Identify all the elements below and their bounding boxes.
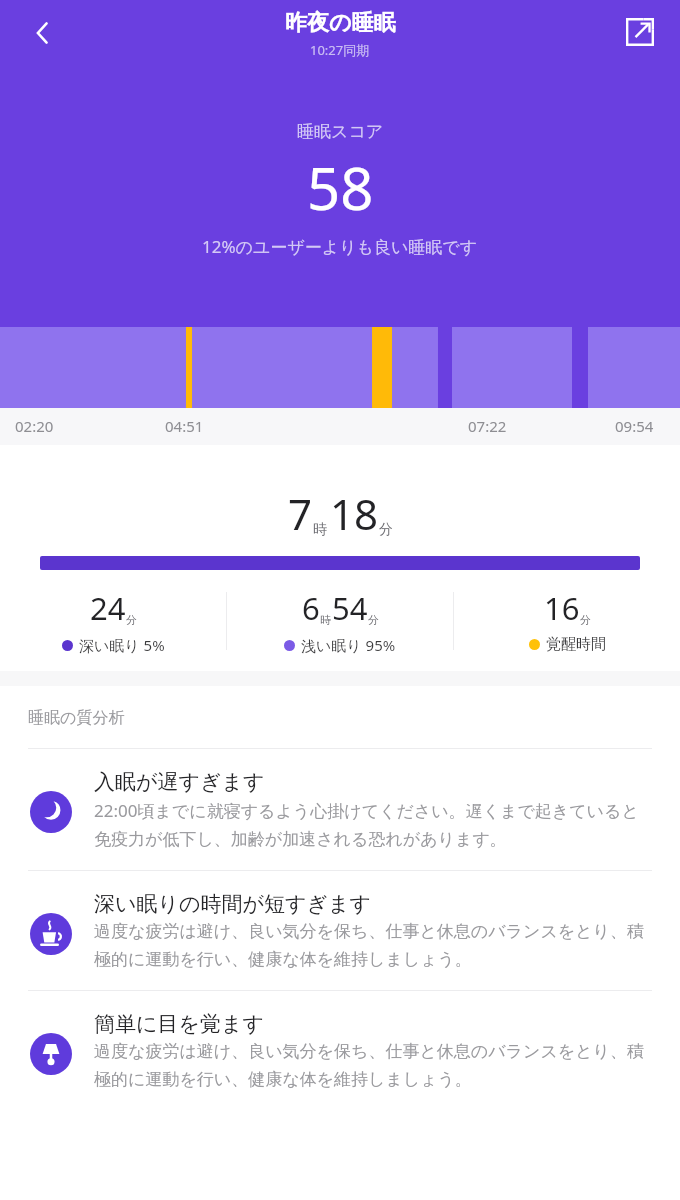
button[interactable]: 深い眠りの時間が短すぎます (0, 871, 680, 990)
staticText: 分 (580, 613, 591, 627)
staticText: 深い眠りの時間が短すぎます (94, 891, 371, 917)
button[interactable]: 6 (227, 587, 453, 655)
staticText: 18 (330, 485, 379, 542)
button[interactable]: 16 (454, 587, 680, 654)
staticText: 過度な疲労は避け、良い気分を保ち、仕事と休息のバランスをとり、積極的に運動を行い… (94, 1041, 650, 1090)
staticText: 分 (379, 521, 393, 539)
staticText: 過度な疲労は避け、良い気分を保ち、仕事と休息のバランスをとり、積極的に運動を行い… (94, 921, 650, 970)
staticText: 12%のユーザーよりも良い睡眠です (202, 235, 478, 258)
staticText: 04:51 (165, 416, 204, 436)
button[interactable]: Back (14, 4, 72, 62)
staticText: 時 (313, 521, 327, 539)
staticText: 深い眠り 5% (79, 635, 165, 655)
staticText: 浅い眠り 95% (301, 635, 396, 655)
staticText: 睡眠の質分析 (28, 708, 125, 728)
button[interactable]: 簡単に目を覚ます (0, 991, 680, 1110)
staticText: 簡単に目を覚ます (94, 1011, 264, 1037)
staticText: 22:00頃までに就寝するよう心掛けてください。遅くまで起きていると免疫力が低下… (94, 799, 650, 850)
staticText: 入眠が遅すぎます (94, 769, 265, 795)
staticText: 時 (320, 613, 331, 627)
staticText: 6 (302, 587, 320, 629)
staticText: 24 (90, 587, 126, 629)
staticText: 10:27同期 (310, 41, 370, 59)
button[interactable]: 入眠が遅すぎます (0, 749, 680, 870)
staticText: 昨夜の睡眠 (285, 9, 396, 37)
staticText: 分 (126, 613, 137, 627)
staticText: 覚醒時間 (546, 635, 606, 654)
staticText: 58 (307, 148, 374, 227)
staticText: 7 (288, 485, 313, 542)
button[interactable]: Share (612, 4, 668, 60)
staticText: 07:22 (468, 416, 507, 436)
staticText: 睡眠スコア (297, 121, 384, 142)
staticText: 16 (544, 587, 580, 629)
staticText: 02:20 (15, 416, 54, 436)
staticText: 54 (332, 587, 368, 629)
staticText: 09:54 (615, 416, 654, 436)
staticText: 分 (368, 613, 379, 627)
button[interactable]: 24 (0, 587, 226, 655)
